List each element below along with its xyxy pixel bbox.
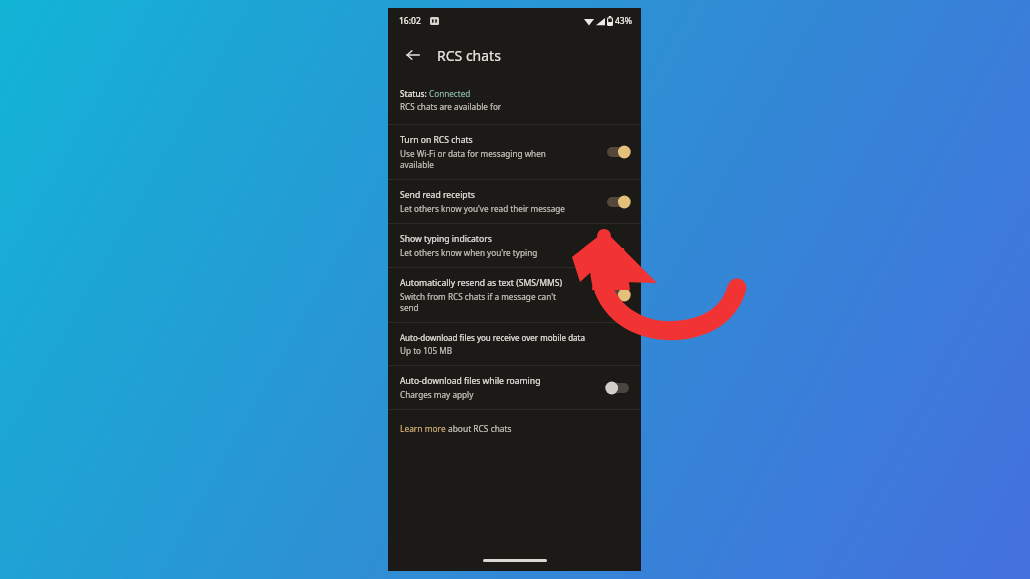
button[interactable]: Status: [388,76,641,124]
staticText: Send read receipts [400,189,475,201]
button[interactable]: Toggle on [605,144,631,160]
staticText: Show typing indicators [400,233,492,245]
button[interactable]: Toggle on [605,287,631,303]
button[interactable]: Toggle on [605,194,631,210]
button[interactable]: Turn on RCS chats [388,125,641,179]
staticText: Let others know you've read their messag… [400,203,565,214]
staticText: RCS chats [437,46,501,65]
button[interactable]: Automatically resend as text (SMS/MMS) [388,268,641,322]
staticText: Connected [429,88,471,99]
button[interactable]: Show typing indicators [388,224,641,267]
staticText: 43% [615,15,632,27]
button[interactable]: Toggle off [605,380,631,396]
button[interactable]: Learn more [388,410,641,447]
staticText: Let others know when you're typing [400,247,538,258]
button[interactable]: Auto-download files while roaming [388,366,641,409]
staticText: Automatically resend as text (SMS/MMS) [400,277,563,289]
staticText: Learn more [400,423,448,434]
staticText: Up to 105 MB [400,345,453,356]
staticText: Use Wi-Fi or data for messaging when ava… [400,148,546,170]
staticText: 16:02 [399,15,421,27]
staticText: RCS chats are available for [400,101,502,112]
button[interactable]: Back [400,42,426,68]
staticText: Auto-download files you receive over mob… [400,332,585,343]
button[interactable]: Send read receipts [388,180,641,223]
staticText: Switch from RCS chats if a message can't… [400,291,556,313]
staticText: Status: [400,88,429,99]
staticText: Auto-download files while roaming [400,375,541,387]
staticText: about RCS chats [448,423,512,434]
staticText: Turn on RCS chats [400,134,473,146]
button[interactable]: Auto-download files you receive over mob… [388,323,641,365]
staticText: Charges may apply [400,389,474,400]
